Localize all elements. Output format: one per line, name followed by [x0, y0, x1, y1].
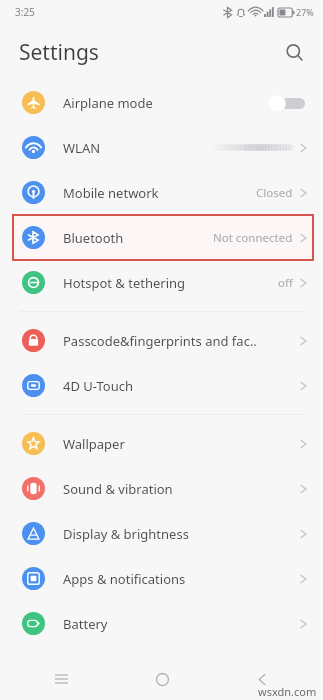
- staticText: Mobile network: [63, 184, 159, 202]
- staticText: Bluetooth: [63, 229, 124, 247]
- staticText: Not connected: [213, 230, 293, 246]
- button[interactable]: Search: [277, 35, 311, 69]
- button[interactable]: Airplane mode toggle: [267, 93, 307, 113]
- staticText: off: [278, 275, 293, 291]
- button[interactable]: Wallpaper: [0, 421, 323, 466]
- staticText: WLAN: [63, 139, 101, 157]
- button[interactable]: Passcode&fingerprints and fac..: [0, 318, 323, 363]
- staticText: 3:25: [15, 5, 35, 19]
- button[interactable]: Recents: [42, 660, 80, 698]
- staticText: Sound & vibration: [63, 480, 173, 498]
- button[interactable]: Home: [143, 660, 181, 698]
- button[interactable]: Hotspot & tethering: [0, 260, 323, 305]
- button[interactable]: 4D U-Touch: [0, 363, 323, 408]
- staticText: Settings: [19, 38, 99, 67]
- staticText: Airplane mode: [63, 94, 153, 112]
- button[interactable]: Back: [243, 660, 281, 698]
- button[interactable]: Battery: [0, 601, 323, 646]
- staticText: 4D U-Touch: [63, 377, 133, 395]
- button[interactable]: Airplane mode: [0, 80, 323, 125]
- staticText: Wallpaper: [63, 435, 125, 453]
- staticText: Passcode&fingerprints and fac..: [63, 332, 257, 350]
- staticText: wsxdn.com: [258, 684, 317, 699]
- staticText: Display & brightness: [63, 525, 189, 543]
- staticText: Battery: [63, 615, 108, 633]
- button[interactable]: Mobile network: [0, 170, 323, 215]
- button[interactable]: Display & brightness: [0, 511, 323, 556]
- staticText: Hotspot & tethering: [63, 274, 186, 292]
- button[interactable]: Apps & notifications: [0, 556, 323, 601]
- button[interactable]: WLAN: [0, 125, 323, 170]
- staticText: Closed: [256, 185, 293, 201]
- button[interactable]: Bluetooth: [0, 215, 323, 260]
- staticText: 27%: [296, 6, 314, 18]
- staticText: Apps & notifications: [63, 570, 186, 588]
- button[interactable]: Sound & vibration: [0, 466, 323, 511]
